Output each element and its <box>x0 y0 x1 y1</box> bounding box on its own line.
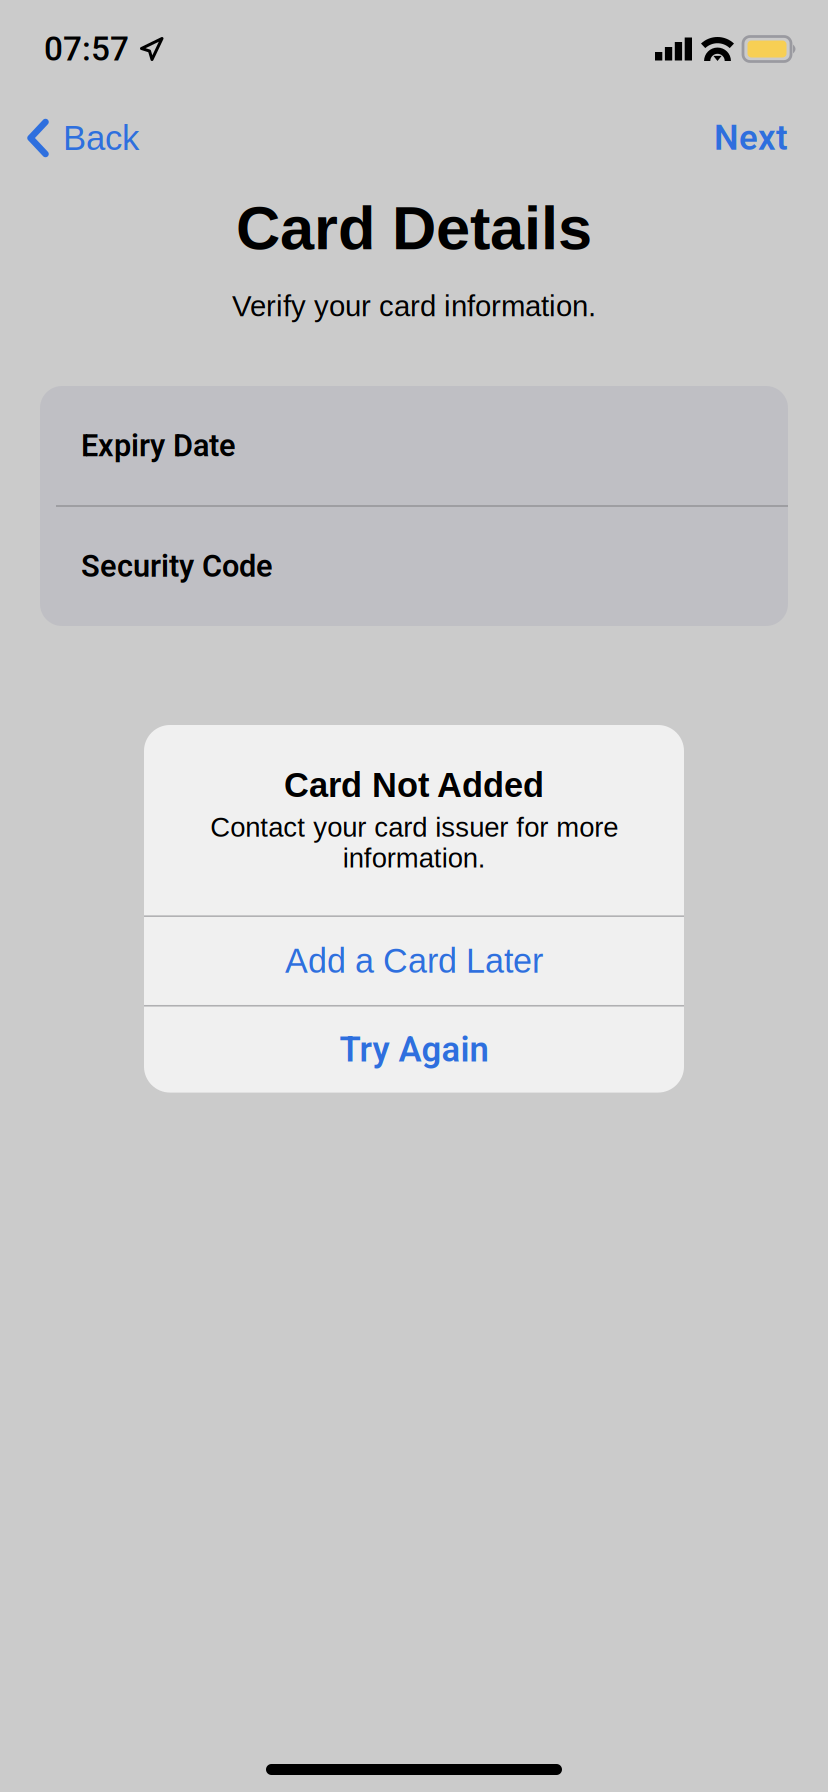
staticText: Verify your card information. <box>232 290 596 322</box>
staticText: Back <box>63 119 139 157</box>
button[interactable]: Next <box>694 98 828 178</box>
staticText: Expiry Date <box>81 428 236 464</box>
staticText: Try Again <box>339 1029 488 1070</box>
staticText: Card Details <box>236 194 592 262</box>
staticText: Contact your card issuer for more inform… <box>210 812 618 873</box>
button[interactable]: Try Again <box>144 1007 684 1093</box>
staticText: Security Code <box>81 548 273 584</box>
button[interactable]: Security Code <box>40 507 788 626</box>
staticText: Add a Card Later <box>285 942 543 980</box>
button[interactable]: Add a Card Later <box>144 917 684 1005</box>
staticText: 07:57 <box>44 29 129 69</box>
button[interactable]: Back <box>0 98 159 178</box>
staticText: Next <box>714 118 788 158</box>
button[interactable]: Expiry Date <box>40 386 788 505</box>
staticText: Card Not Added <box>284 766 544 804</box>
